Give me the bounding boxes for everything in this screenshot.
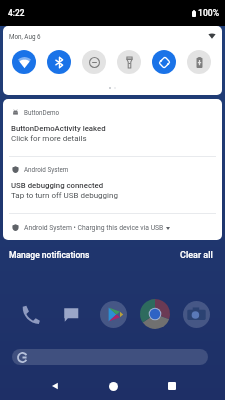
button[interactable]: Flashlight [117, 50, 141, 74]
button[interactable]: Battery saver [187, 50, 211, 74]
button[interactable]: Home [102, 375, 124, 397]
button[interactable]: Play Store [100, 301, 127, 328]
button[interactable]: Recents [161, 375, 183, 397]
staticText: ButtonDemoActivity leaked [11, 124, 106, 133]
button[interactable]: Android System [3, 156, 222, 213]
button[interactable]: Messages [58, 301, 84, 327]
button[interactable]: ButtonDemo [3, 99, 222, 156]
button[interactable]: Back [44, 375, 66, 397]
button[interactable]: Search [12, 349, 208, 365]
staticText: Mon, Aug 6 [9, 33, 41, 40]
button[interactable]: Phone [17, 301, 43, 327]
button[interactable]: Wi-Fi [12, 50, 36, 74]
button[interactable]: Manage notifications [9, 250, 90, 260]
staticText: USB debugging connected [11, 181, 104, 190]
staticText: Click for more details [11, 134, 87, 143]
button[interactable]: Camera [183, 301, 210, 328]
staticText: Tap to turn off USB debugging [11, 191, 118, 200]
button[interactable]: Do not disturb [82, 50, 106, 74]
button[interactable]: Auto rotate [152, 50, 176, 74]
staticText: Android System [24, 166, 69, 173]
button[interactable]: Clear all [180, 250, 213, 261]
staticText: Android System • Charging this device vi… [24, 224, 164, 232]
button[interactable]: Bluetooth [47, 50, 71, 74]
staticText: 4:22 [8, 8, 25, 18]
button[interactable]: Chrome [140, 299, 170, 329]
staticText: Clear all [180, 250, 213, 261]
staticText: ButtonDemo [24, 109, 60, 116]
button[interactable]: Android System • Charging this device vi… [3, 213, 222, 240]
staticText: Manage notifications [9, 250, 90, 260]
staticText: 100% [198, 8, 219, 18]
